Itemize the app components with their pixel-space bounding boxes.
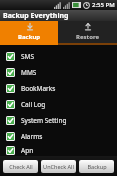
staticText: SMS [21, 52, 35, 61]
button[interactable]: Call Log [0, 96, 117, 112]
staticText: Check All [9, 163, 33, 170]
staticText: Call Log [21, 100, 46, 109]
button[interactable]: UnCheck All [41, 160, 76, 173]
button[interactable]: BookMarks [0, 80, 117, 96]
staticText: Alarms [21, 132, 43, 141]
staticText: BookMarks [21, 84, 56, 93]
staticText: Backup [18, 33, 41, 41]
button[interactable]: Backup [79, 160, 114, 173]
button[interactable]: Apn [0, 144, 117, 156]
staticText: Restore [76, 33, 100, 41]
staticText: 2:55 PM [92, 1, 115, 9]
staticText: Apn [21, 146, 34, 155]
button[interactable]: MMS [0, 64, 117, 80]
button[interactable]: Alarms [0, 128, 117, 144]
staticText: UnCheck All [43, 163, 74, 170]
button[interactable]: Backup [0, 21, 58, 43]
button[interactable]: Check All [3, 160, 38, 173]
staticText: MMS [21, 68, 37, 77]
button[interactable]: System Setting [0, 112, 117, 128]
staticText: Backup Everything [3, 11, 69, 21]
button[interactable]: Restore [58, 21, 117, 43]
staticText: System Setting [21, 116, 67, 125]
button[interactable]: SMS [0, 48, 117, 64]
staticText: Backup [87, 163, 107, 170]
